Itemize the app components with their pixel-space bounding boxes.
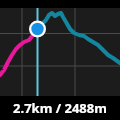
button[interactable]: Elevation profile chart bbox=[0, 0, 120, 120]
staticText: 2.7km / 2488m bbox=[13, 99, 107, 117]
button[interactable]: 2.7km / 2488m bbox=[0, 96, 120, 120]
